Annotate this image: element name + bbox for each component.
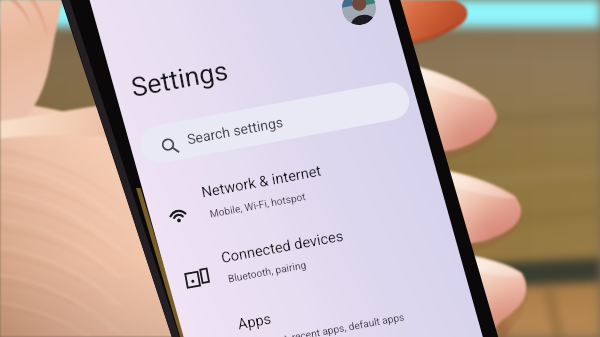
button[interactable] (0, 0, 600, 337)
